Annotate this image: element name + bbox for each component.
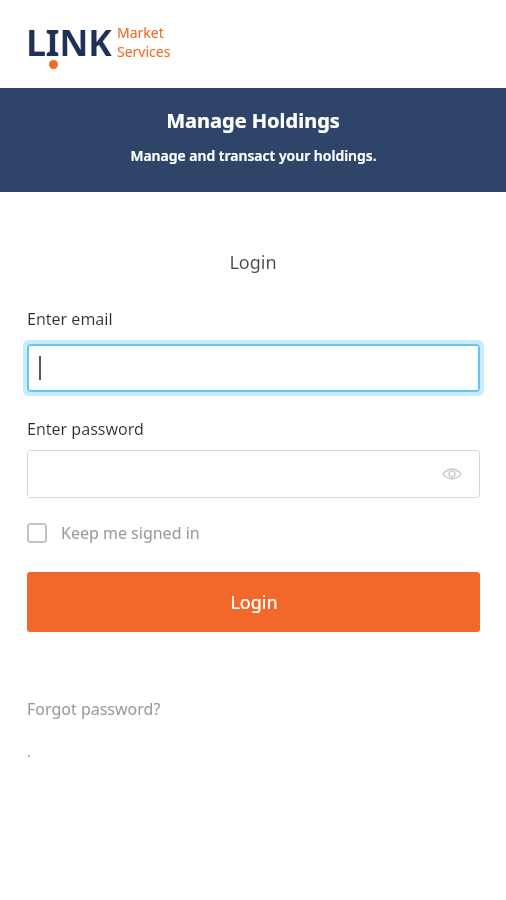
button[interactable] bbox=[27, 344, 480, 392]
staticText: Manage and transact your holdings. bbox=[130, 146, 377, 165]
button[interactable]: Show password bbox=[27, 450, 480, 498]
staticText: Login bbox=[230, 590, 278, 615]
button[interactable]: Keep me signed in bbox=[27, 522, 200, 544]
staticText: Forgot password? bbox=[27, 698, 161, 720]
staticText: LINK bbox=[26, 18, 112, 67]
staticText: Login bbox=[229, 250, 277, 275]
staticText: Enter email bbox=[27, 308, 113, 330]
button[interactable]: Show password bbox=[438, 460, 466, 488]
button[interactable]: Forgot password? bbox=[27, 698, 161, 720]
staticText: Keep me signed in bbox=[61, 522, 200, 544]
staticText: Market bbox=[117, 23, 164, 42]
staticText: Enter password bbox=[27, 418, 144, 440]
button[interactable]: Login bbox=[27, 572, 480, 632]
staticText: Services bbox=[117, 42, 171, 61]
staticText: Manage Holdings bbox=[166, 107, 340, 134]
staticText: . bbox=[27, 742, 31, 761]
